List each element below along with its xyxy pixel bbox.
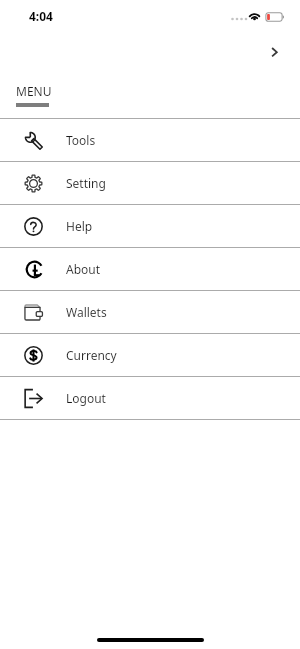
button[interactable]: Help — [0, 205, 300, 247]
staticText: Logout — [66, 390, 106, 406]
button[interactable]: Setting — [0, 162, 300, 204]
staticText: Help — [66, 218, 93, 234]
button[interactable]: Currency — [0, 334, 300, 376]
button[interactable]: Tools — [0, 119, 300, 161]
staticText: 4:04 — [29, 8, 53, 24]
staticText: MENU — [16, 83, 52, 99]
staticText: Tools — [66, 132, 96, 148]
button[interactable]: Logout — [0, 377, 300, 419]
button[interactable]: Wallets — [0, 291, 300, 333]
staticText: About — [66, 261, 101, 277]
button[interactable]: MENU — [16, 83, 52, 99]
staticText: Currency — [66, 347, 117, 363]
staticText: Wallets — [66, 304, 107, 320]
button[interactable]: About — [0, 248, 300, 290]
button[interactable]: Open — [263, 40, 287, 64]
staticText: Setting — [66, 175, 106, 191]
